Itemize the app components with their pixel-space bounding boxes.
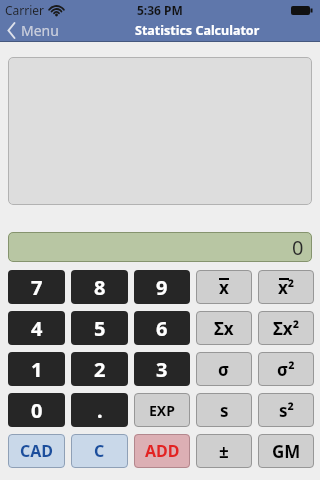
button[interactable]: 5 (71, 311, 128, 345)
button[interactable]: 7 (8, 270, 65, 304)
button[interactable]: 2 (71, 352, 128, 386)
staticText: 0 (31, 397, 43, 424)
staticText: Menu (21, 21, 59, 40)
button[interactable]: 6 (134, 311, 190, 345)
staticText: 9 (156, 274, 168, 301)
staticText: s² (279, 399, 294, 422)
button[interactable]: ± (196, 434, 252, 468)
button[interactable]: s (196, 393, 252, 427)
staticText: x² (278, 276, 295, 299)
staticText: EXP (149, 401, 175, 420)
staticText: 7 (31, 274, 43, 301)
staticText: σ (218, 358, 230, 381)
button[interactable]: Σx (196, 311, 252, 345)
staticText: 4 (31, 315, 43, 342)
staticText: 2 (94, 356, 106, 383)
button[interactable]: GM (258, 434, 314, 468)
staticText: . (97, 397, 103, 424)
staticText: Carrier (5, 2, 45, 18)
staticText: 5:36 PM (137, 2, 183, 18)
staticText: s (220, 399, 229, 422)
button[interactable]: ADD (134, 434, 190, 468)
staticText: Statistics Calculator (135, 22, 260, 39)
staticText: 8 (94, 274, 106, 301)
button[interactable]: Menu (6, 21, 59, 40)
button[interactable]: Σx² (258, 311, 314, 345)
button[interactable]: σ² (258, 352, 314, 386)
staticText: Σx (214, 317, 234, 340)
staticText: σ² (277, 358, 295, 381)
button[interactable]: σ (196, 352, 252, 386)
button[interactable]: EXP (134, 393, 190, 427)
staticText: x (219, 276, 229, 299)
button[interactable]: C (71, 434, 128, 468)
staticText: ± (219, 440, 229, 463)
staticText: ADD (145, 440, 180, 462)
staticText: 0 (292, 234, 304, 261)
button[interactable]: 0 (8, 393, 65, 427)
button[interactable]: s² (258, 393, 314, 427)
staticText: 3 (156, 356, 168, 383)
button[interactable]: 8 (71, 270, 128, 304)
staticText: C (94, 440, 105, 462)
button[interactable]: 1 (8, 352, 65, 386)
button[interactable]: 4 (8, 311, 65, 345)
staticText: 5 (94, 315, 106, 342)
button[interactable]: CAD (8, 434, 65, 468)
staticText: 1 (31, 356, 43, 383)
button[interactable]: x² (258, 270, 314, 304)
button[interactable]: 9 (134, 270, 190, 304)
staticText: GM (272, 440, 301, 463)
staticText: 6 (156, 315, 168, 342)
button[interactable]: 3 (134, 352, 190, 386)
button[interactable]: x (196, 270, 252, 304)
button[interactable]: . (71, 393, 128, 427)
staticText: CAD (20, 440, 54, 462)
staticText: Σx² (273, 317, 300, 340)
